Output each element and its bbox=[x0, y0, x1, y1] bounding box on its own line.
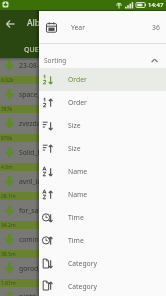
staticText: 14:47 bbox=[148, 1, 164, 9]
staticText: 28.1m bbox=[1, 193, 16, 200]
button[interactable]: Time bbox=[39, 206, 166, 229]
staticText: gorod_31 bbox=[19, 264, 50, 273]
button[interactable]: space_od bbox=[0, 87, 166, 116]
button[interactable]: 23-08-14 bbox=[0, 58, 166, 87]
staticText: 36 bbox=[152, 23, 160, 32]
staticText: Name bbox=[68, 167, 88, 176]
button[interactable]: Solid_Expl bbox=[0, 145, 166, 174]
staticText: 8.02k bbox=[1, 77, 14, 84]
staticText: Category bbox=[68, 259, 97, 268]
staticText: Sorting bbox=[44, 56, 67, 65]
button[interactable]: Year bbox=[39, 11, 166, 43]
staticText: avril_lavig bbox=[19, 177, 51, 186]
staticText: space_od bbox=[19, 90, 49, 99]
staticText: zvezda_m bbox=[19, 119, 50, 128]
button[interactable]: coming_so bbox=[0, 232, 166, 261]
staticText: 23-08-14 bbox=[19, 61, 47, 70]
staticText: Order bbox=[68, 75, 87, 84]
button[interactable]: Time bbox=[39, 229, 166, 252]
staticText: Time bbox=[68, 213, 84, 222]
staticText: 38.5m bbox=[1, 251, 16, 258]
staticText: Name bbox=[68, 190, 88, 199]
staticText: 1.61m bbox=[1, 280, 16, 287]
button[interactable]: Order bbox=[39, 68, 166, 91]
staticText: 34.2m bbox=[1, 222, 16, 229]
staticText: Order bbox=[68, 98, 87, 107]
button[interactable]: Category bbox=[39, 252, 166, 275]
button[interactable]: zvezda_m bbox=[0, 116, 166, 145]
staticText: night_sk bbox=[19, 292, 46, 296]
staticText: 787k bbox=[1, 106, 13, 113]
button[interactable]: Order bbox=[39, 91, 166, 114]
button[interactable]: Name bbox=[39, 183, 166, 206]
staticText: coming_so bbox=[19, 235, 54, 244]
button[interactable]: Sorting bbox=[39, 44, 166, 68]
button[interactable]: Category bbox=[39, 275, 166, 296]
button[interactable]: avril_lavig bbox=[0, 174, 166, 203]
staticText: Time bbox=[68, 236, 84, 245]
staticText: Size bbox=[68, 144, 81, 153]
button[interactable]: gorod_31 bbox=[0, 261, 166, 290]
staticText: 876k bbox=[1, 135, 13, 142]
staticText: Year bbox=[71, 23, 85, 32]
staticText: 4.0m bbox=[1, 164, 13, 171]
staticText: Size bbox=[68, 121, 81, 130]
button[interactable]: Name bbox=[39, 160, 166, 183]
button[interactable]: for_sale_0 bbox=[0, 203, 166, 232]
button[interactable]: Size bbox=[39, 114, 166, 137]
staticText: for_sale_0 bbox=[19, 206, 51, 215]
button[interactable]: Size bbox=[39, 137, 166, 160]
staticText: Category bbox=[68, 282, 97, 291]
staticText: Solid_Expl bbox=[19, 148, 51, 157]
staticText: QUEUE bbox=[24, 45, 48, 55]
staticText: Albums bbox=[27, 17, 58, 29]
button[interactable]: night_sk bbox=[0, 290, 166, 296]
